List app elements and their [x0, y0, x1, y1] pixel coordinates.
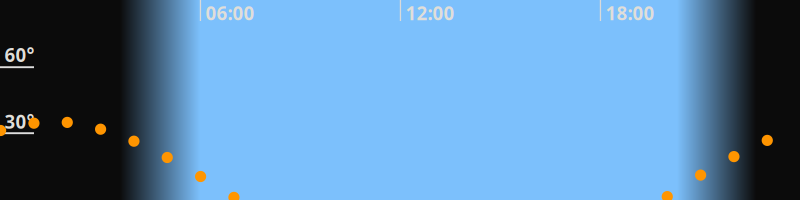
button[interactable]: Hourly temperature forecast chart [0, 0, 800, 200]
staticText: 18:00 [605, 0, 654, 25]
staticText: 06:00 [205, 0, 254, 25]
staticText: 12:00 [405, 0, 454, 25]
staticText: 30° [4, 109, 34, 134]
staticText: 60° [4, 42, 34, 67]
